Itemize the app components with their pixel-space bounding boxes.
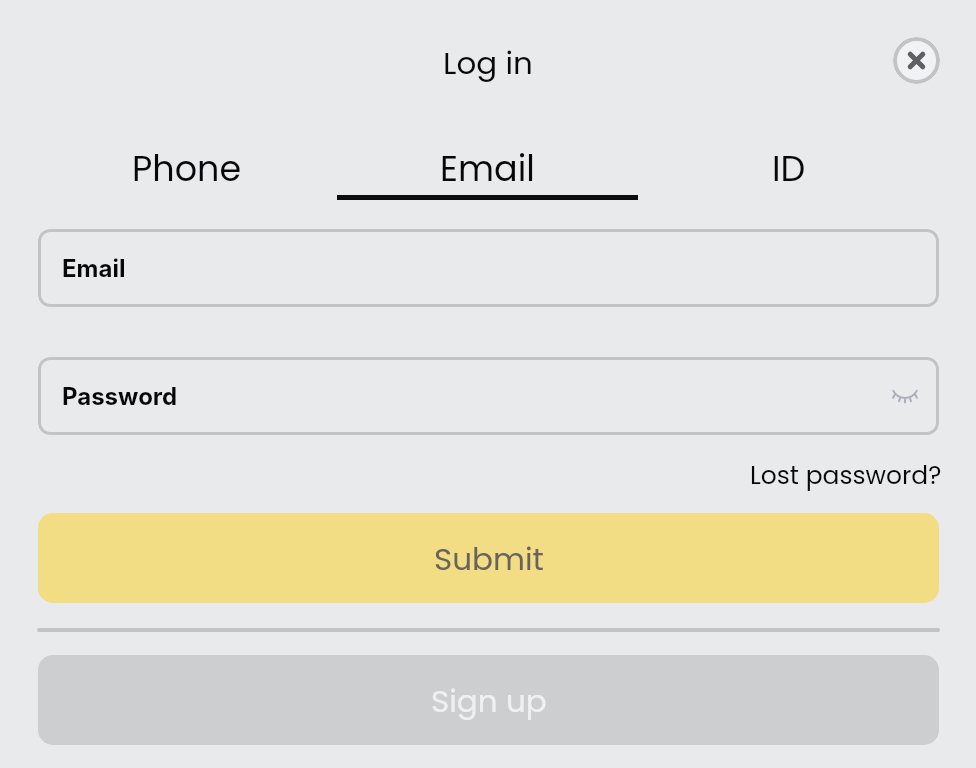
button[interactable]: Email — [38, 229, 939, 307]
staticText: Log in — [443, 41, 533, 84]
staticText: Email — [440, 144, 535, 193]
staticText: ID — [772, 144, 806, 193]
button[interactable]: Lost password? — [750, 458, 942, 493]
button[interactable]: Sign up — [38, 655, 939, 745]
staticText: Sign up — [431, 679, 547, 722]
button[interactable]: Close — [893, 37, 940, 84]
button[interactable]: Submit — [38, 513, 939, 603]
staticText: Lost password? — [750, 458, 942, 493]
button[interactable]: Phone — [37, 144, 337, 202]
staticText: Submit — [434, 537, 544, 580]
staticText: Phone — [132, 144, 242, 193]
button[interactable]: Email — [337, 144, 638, 202]
button[interactable]: ID — [638, 144, 939, 202]
button[interactable]: Show password — [885, 374, 925, 414]
staticText: Email — [62, 254, 126, 283]
button[interactable]: Password — [38, 357, 939, 435]
staticText: Password — [62, 382, 178, 411]
